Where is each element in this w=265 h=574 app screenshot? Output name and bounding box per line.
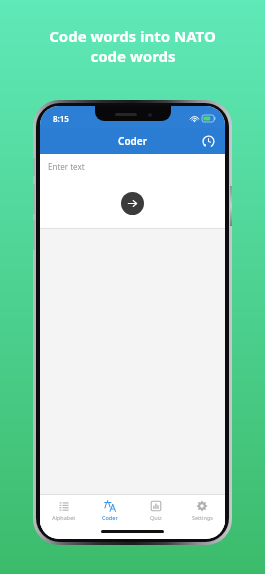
staticText: Coder (102, 514, 118, 521)
button[interactable]: Enter text (48, 161, 217, 185)
staticText: Coder (118, 134, 147, 148)
staticText: code words (90, 46, 176, 66)
button[interactable]: Settings (179, 497, 225, 524)
button[interactable]: Coder (87, 497, 133, 524)
staticText: Code words into NATO (49, 26, 216, 46)
button[interactable]: History (198, 131, 218, 151)
button[interactable]: Encode (121, 192, 144, 215)
button[interactable]: Quiz (133, 497, 179, 524)
staticText: Alphabet (52, 514, 76, 521)
staticText: 8:15 (53, 113, 69, 124)
button[interactable]: Alphabet (40, 497, 87, 524)
staticText: Settings (192, 514, 213, 521)
staticText: Enter text (48, 161, 85, 172)
staticText: Quiz (150, 514, 162, 521)
